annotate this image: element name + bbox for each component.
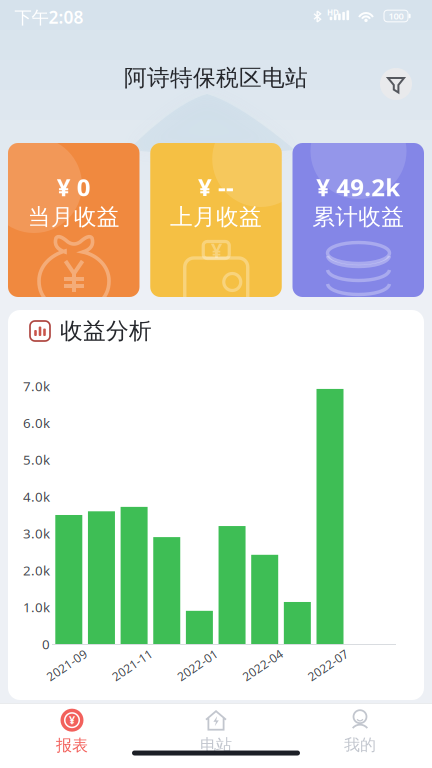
- staticText: 3.0k: [23, 525, 50, 542]
- staticText: 下午2:08: [14, 5, 83, 28]
- button[interactable]: 我的: [288, 703, 432, 761]
- staticText: 报表: [56, 736, 88, 755]
- staticText: 我的: [344, 735, 376, 755]
- staticText: ¥ --: [198, 171, 234, 203]
- button[interactable]: ¥: [0, 703, 144, 761]
- staticText: 1.0k: [23, 598, 50, 616]
- staticText: HD: [327, 7, 339, 18]
- staticText: 2021-09: [44, 657, 90, 673]
- staticText: 100: [388, 10, 403, 22]
- staticText: 当月收益: [28, 203, 120, 231]
- staticText: 4.0k: [23, 488, 50, 505]
- button[interactable]: 筛选: [380, 68, 412, 100]
- staticText: 收益分析: [60, 317, 152, 345]
- staticText: ¥ 49.2k: [316, 171, 400, 203]
- staticText: ¥: [211, 237, 222, 263]
- staticText: 2022-07: [305, 657, 351, 673]
- staticText: 5.0k: [23, 451, 50, 468]
- staticText: 累计收益: [312, 203, 404, 231]
- staticText: 2.0k: [23, 561, 50, 579]
- staticText: 电站: [200, 735, 232, 755]
- staticText: 上月收益: [170, 203, 262, 231]
- staticText: 2022-01: [174, 657, 220, 673]
- staticText: 6.0k: [23, 414, 50, 432]
- button[interactable]: 电站: [144, 703, 288, 761]
- staticText: ¥: [69, 713, 75, 727]
- staticText: 阿诗特保税区电站: [124, 64, 308, 92]
- staticText: 2021-11: [109, 657, 155, 673]
- staticText: 2022-04: [240, 657, 286, 673]
- staticText: 7.0k: [23, 377, 50, 395]
- staticText: ¥ 0: [57, 171, 91, 203]
- staticText: 0: [42, 635, 50, 653]
